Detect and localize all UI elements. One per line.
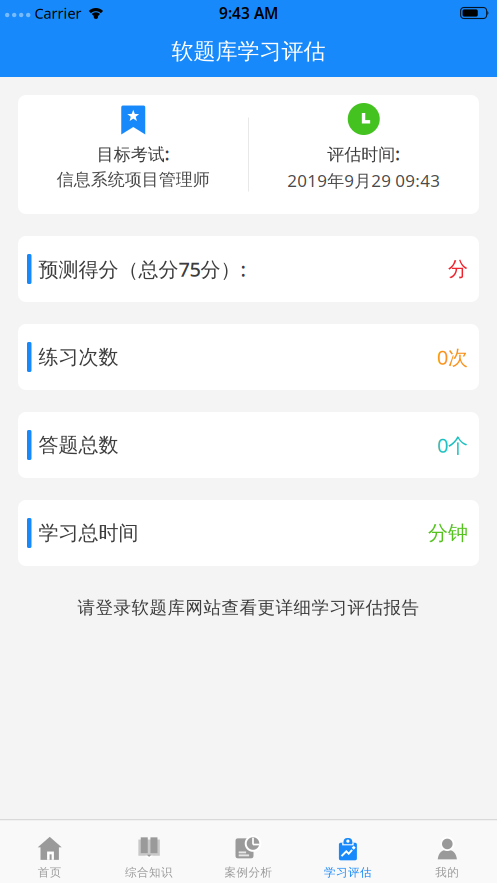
staticText: 分钟 <box>428 521 468 545</box>
staticText: 9:43 AM <box>219 3 278 23</box>
staticText: 学习评估 <box>324 865 372 879</box>
staticText: 我的 <box>435 865 459 879</box>
staticText: 练习次数 <box>38 345 118 369</box>
button[interactable]: 综合知识 <box>99 820 199 882</box>
staticText: 软题库学习评估 <box>171 38 325 65</box>
button[interactable]: 学习评估 <box>298 820 398 882</box>
button[interactable]: 案例分析 <box>199 820 298 882</box>
staticText: 答题总数 <box>38 433 118 457</box>
staticText: 请登录软题库网站查看更详细学习评估报告 <box>77 597 419 618</box>
staticText: 0次 <box>437 344 468 370</box>
staticText: 信息系统项目管理师 <box>57 169 210 190</box>
staticText: 首页 <box>38 865 62 879</box>
staticText: 案例分析 <box>224 865 272 879</box>
staticText: 2019年9月29 09:43 <box>287 169 440 192</box>
staticText: 综合知识 <box>125 865 173 879</box>
button[interactable]: 我的 <box>398 820 497 882</box>
staticText: 0个 <box>437 432 468 458</box>
staticText: 预测得分（总分75分）: <box>38 256 245 282</box>
staticText: 目标考试: <box>97 142 170 165</box>
button[interactable]: 首页 <box>0 820 99 882</box>
staticText: Carrier <box>34 3 81 23</box>
staticText: 分 <box>448 257 468 281</box>
staticText: 评估时间: <box>327 142 400 165</box>
staticText: 学习总时间 <box>38 521 138 545</box>
